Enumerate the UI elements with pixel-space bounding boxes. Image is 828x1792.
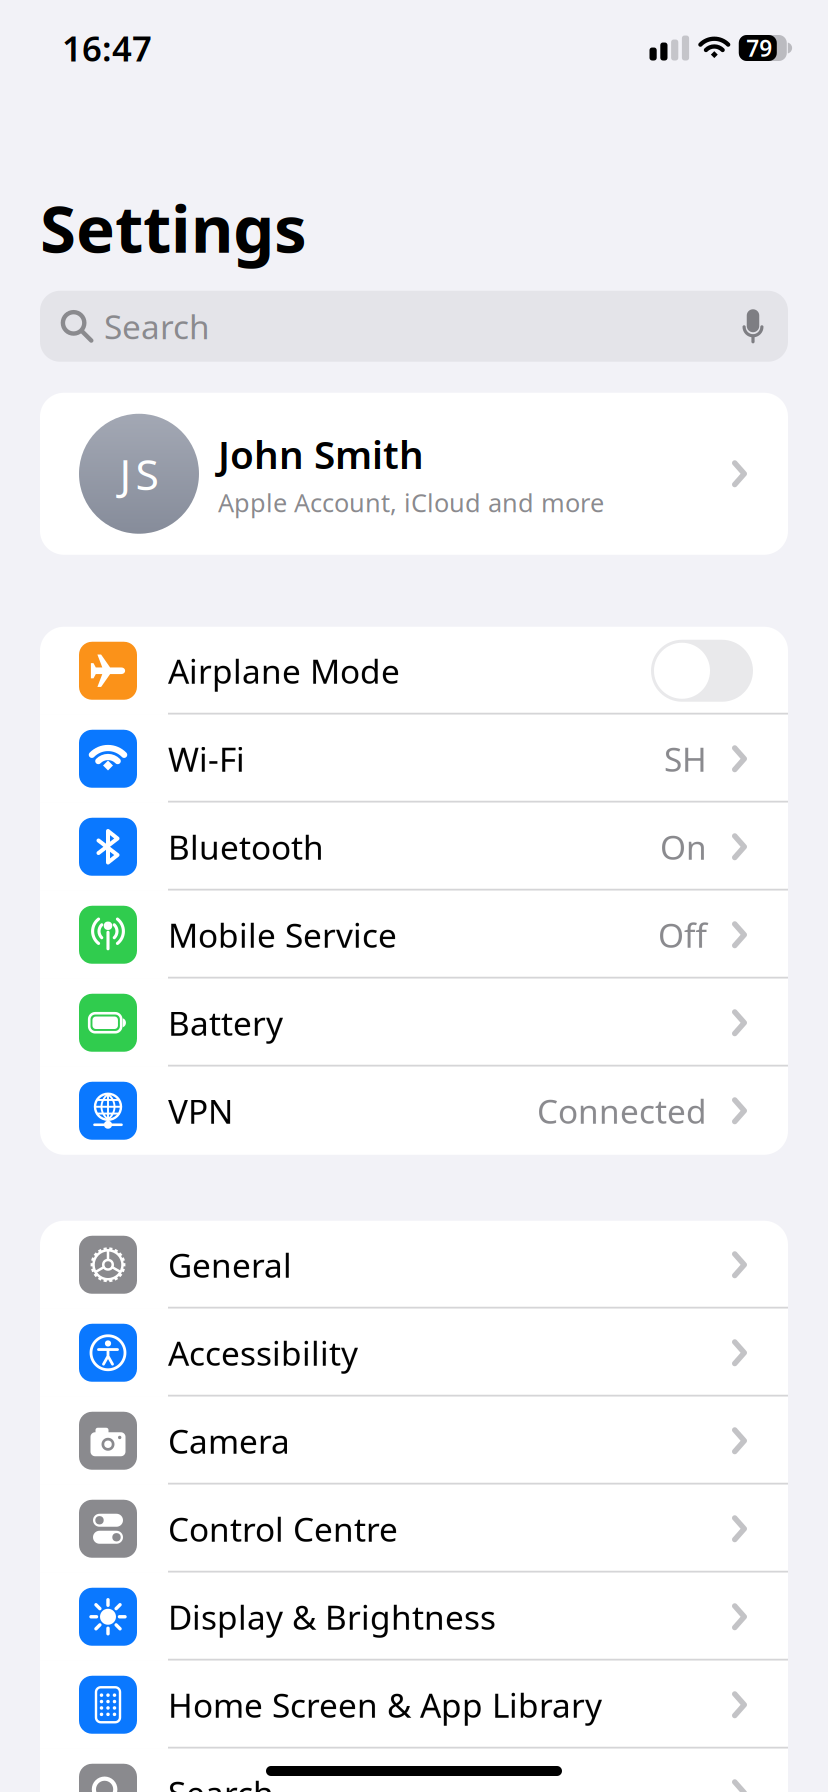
button[interactable]: Battery [40,979,788,1067]
button[interactable]: Display & Brightness [40,1573,788,1661]
button[interactable]: Bluetooth [40,803,788,891]
staticText: John Smith [218,428,424,480]
staticText: Airplane Mode [168,649,400,693]
button[interactable]: Mobile Service [40,891,788,979]
staticText: 79 [746,33,772,63]
staticText: Camera [168,1419,290,1463]
staticText: Search [104,304,210,348]
staticText: General [168,1243,292,1287]
button[interactable]: Control Centre [40,1485,788,1573]
staticText: Mobile Service [168,913,397,957]
staticText: SH [664,737,707,781]
staticText: Apple Account, iCloud and more [218,486,604,519]
button[interactable]: Camera [40,1397,788,1485]
staticText: VPN [168,1089,233,1133]
button[interactable]: Airplane Mode [40,627,788,715]
staticText: 16:47 [62,25,152,71]
staticText: Settings [40,184,307,271]
button[interactable]: Search [40,1749,788,1792]
staticText: Display & Brightness [168,1595,496,1639]
button[interactable]: Home Screen & App Library [40,1661,788,1749]
staticText: Wi-Fi [168,737,245,781]
staticText: Connected [537,1089,707,1133]
button[interactable]: Wi-Fi [40,715,788,803]
button[interactable]: VPN [40,1067,788,1155]
staticText: Home Screen & App Library [168,1683,602,1727]
button[interactable]: Accessibility [40,1309,788,1397]
staticText: Off [658,913,707,957]
staticText: Control Centre [168,1507,398,1551]
staticText: On [660,825,707,869]
staticText: JS [119,445,158,502]
staticText: Bluetooth [168,825,324,869]
staticText: Search [168,1771,274,1792]
staticText: Battery [168,1001,283,1045]
staticText: Accessibility [168,1331,358,1375]
button[interactable]: Search [40,291,788,362]
button[interactable]: JS [40,393,788,555]
button[interactable]: General [40,1221,788,1309]
